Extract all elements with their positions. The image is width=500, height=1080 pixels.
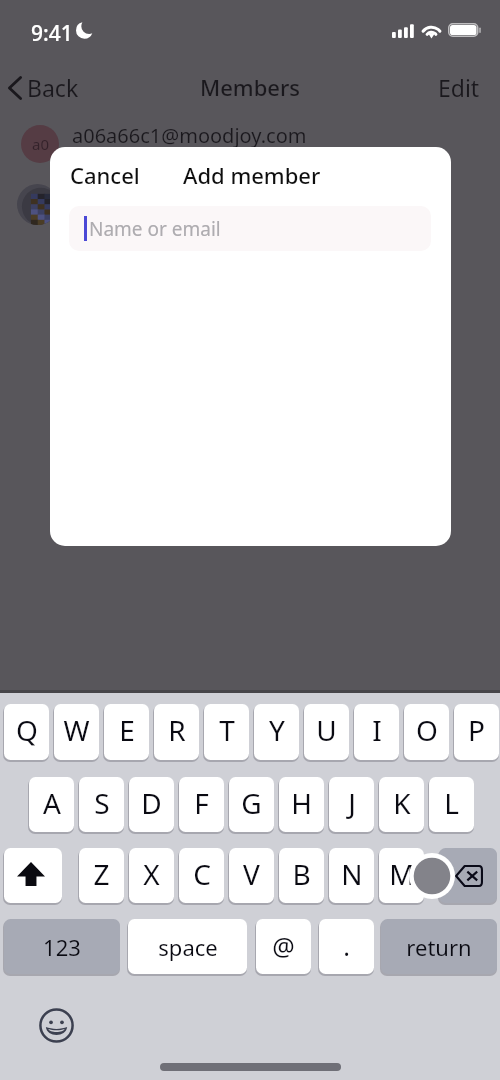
button[interactable]: A [29, 777, 74, 832]
staticText: Back [27, 72, 79, 103]
staticText: @ [272, 929, 295, 963]
staticText: Cancel [70, 160, 140, 190]
staticText: C [193, 855, 211, 893]
button[interactable]: I [354, 704, 399, 760]
button[interactable]: G [229, 777, 274, 832]
button[interactable]: V [229, 848, 274, 903]
staticText: . [343, 929, 350, 963]
button[interactable]: P [454, 704, 499, 760]
staticText: A [43, 784, 61, 822]
staticText: D [141, 784, 162, 822]
staticText: Members [200, 72, 300, 102]
staticText: R [168, 711, 186, 749]
button[interactable]: space [128, 919, 247, 974]
button[interactable]: Y [254, 704, 299, 760]
button[interactable]: return [381, 919, 497, 974]
button[interactable]: R [154, 704, 199, 760]
button[interactable]: U [304, 704, 349, 760]
button[interactable]: Emoji keyboard [39, 1008, 74, 1043]
button[interactable]: S [79, 777, 124, 832]
staticText: X [143, 855, 160, 893]
staticText: Edit [438, 72, 480, 103]
staticText: H [291, 784, 312, 822]
button[interactable]: @ [256, 919, 311, 974]
staticText: K [393, 784, 411, 822]
staticText: I [372, 711, 382, 749]
button[interactable]: Cancel [64, 156, 146, 194]
staticText: M [389, 855, 415, 893]
button[interactable]: M [379, 848, 424, 903]
button[interactable]: Backspace [439, 848, 497, 903]
button[interactable]: K [379, 777, 424, 832]
staticText: Q [16, 711, 38, 749]
button[interactable]: E [104, 704, 149, 760]
button[interactable]: D [129, 777, 174, 832]
button[interactable]: X [129, 848, 174, 903]
button[interactable]: W [54, 704, 99, 760]
staticText: Z [93, 855, 110, 893]
button[interactable]: Z [79, 848, 124, 903]
button[interactable]: Name or email [69, 206, 431, 251]
button[interactable]: a0 [0, 116, 500, 173]
staticText: J [348, 784, 356, 822]
button[interactable]: H [279, 777, 324, 832]
staticText: 123 [43, 932, 81, 962]
staticText: Y [269, 711, 285, 749]
staticText: V [243, 855, 260, 893]
button[interactable] [0, 173, 500, 231]
staticText: B [292, 855, 311, 893]
staticText: S [94, 784, 110, 822]
button[interactable]: . [319, 919, 374, 974]
button[interactable]: Q [4, 704, 49, 760]
staticText: a06a66c1@moodjoy.com [72, 122, 307, 149]
button[interactable]: O [404, 704, 449, 760]
staticText: 9:41 [31, 19, 73, 48]
staticText: L [444, 784, 459, 822]
staticText: E [119, 711, 135, 749]
button[interactable]: N [329, 848, 374, 903]
button[interactable]: T [204, 704, 249, 760]
staticText: U [316, 711, 337, 749]
button[interactable]: C [179, 848, 224, 903]
button[interactable]: J [329, 777, 374, 832]
staticText: return [406, 932, 472, 962]
staticText: N [341, 855, 363, 893]
staticText: T [219, 711, 235, 749]
staticText: P [468, 711, 485, 749]
button[interactable]: Back [0, 67, 91, 108]
staticText: F [194, 784, 209, 822]
staticText: a0 [32, 134, 49, 154]
staticText: Name or email [89, 216, 221, 242]
button[interactable]: Edit [424, 67, 500, 108]
button[interactable]: 123 [4, 919, 120, 974]
button[interactable]: L [429, 777, 474, 832]
staticText: W [63, 711, 90, 749]
button[interactable]: B [279, 848, 324, 903]
staticText: space [158, 932, 218, 962]
staticText: G [241, 784, 262, 822]
staticText: Add member [183, 160, 321, 190]
button[interactable]: Shift [4, 848, 62, 903]
button[interactable]: F [179, 777, 224, 832]
staticText: O [416, 711, 438, 749]
